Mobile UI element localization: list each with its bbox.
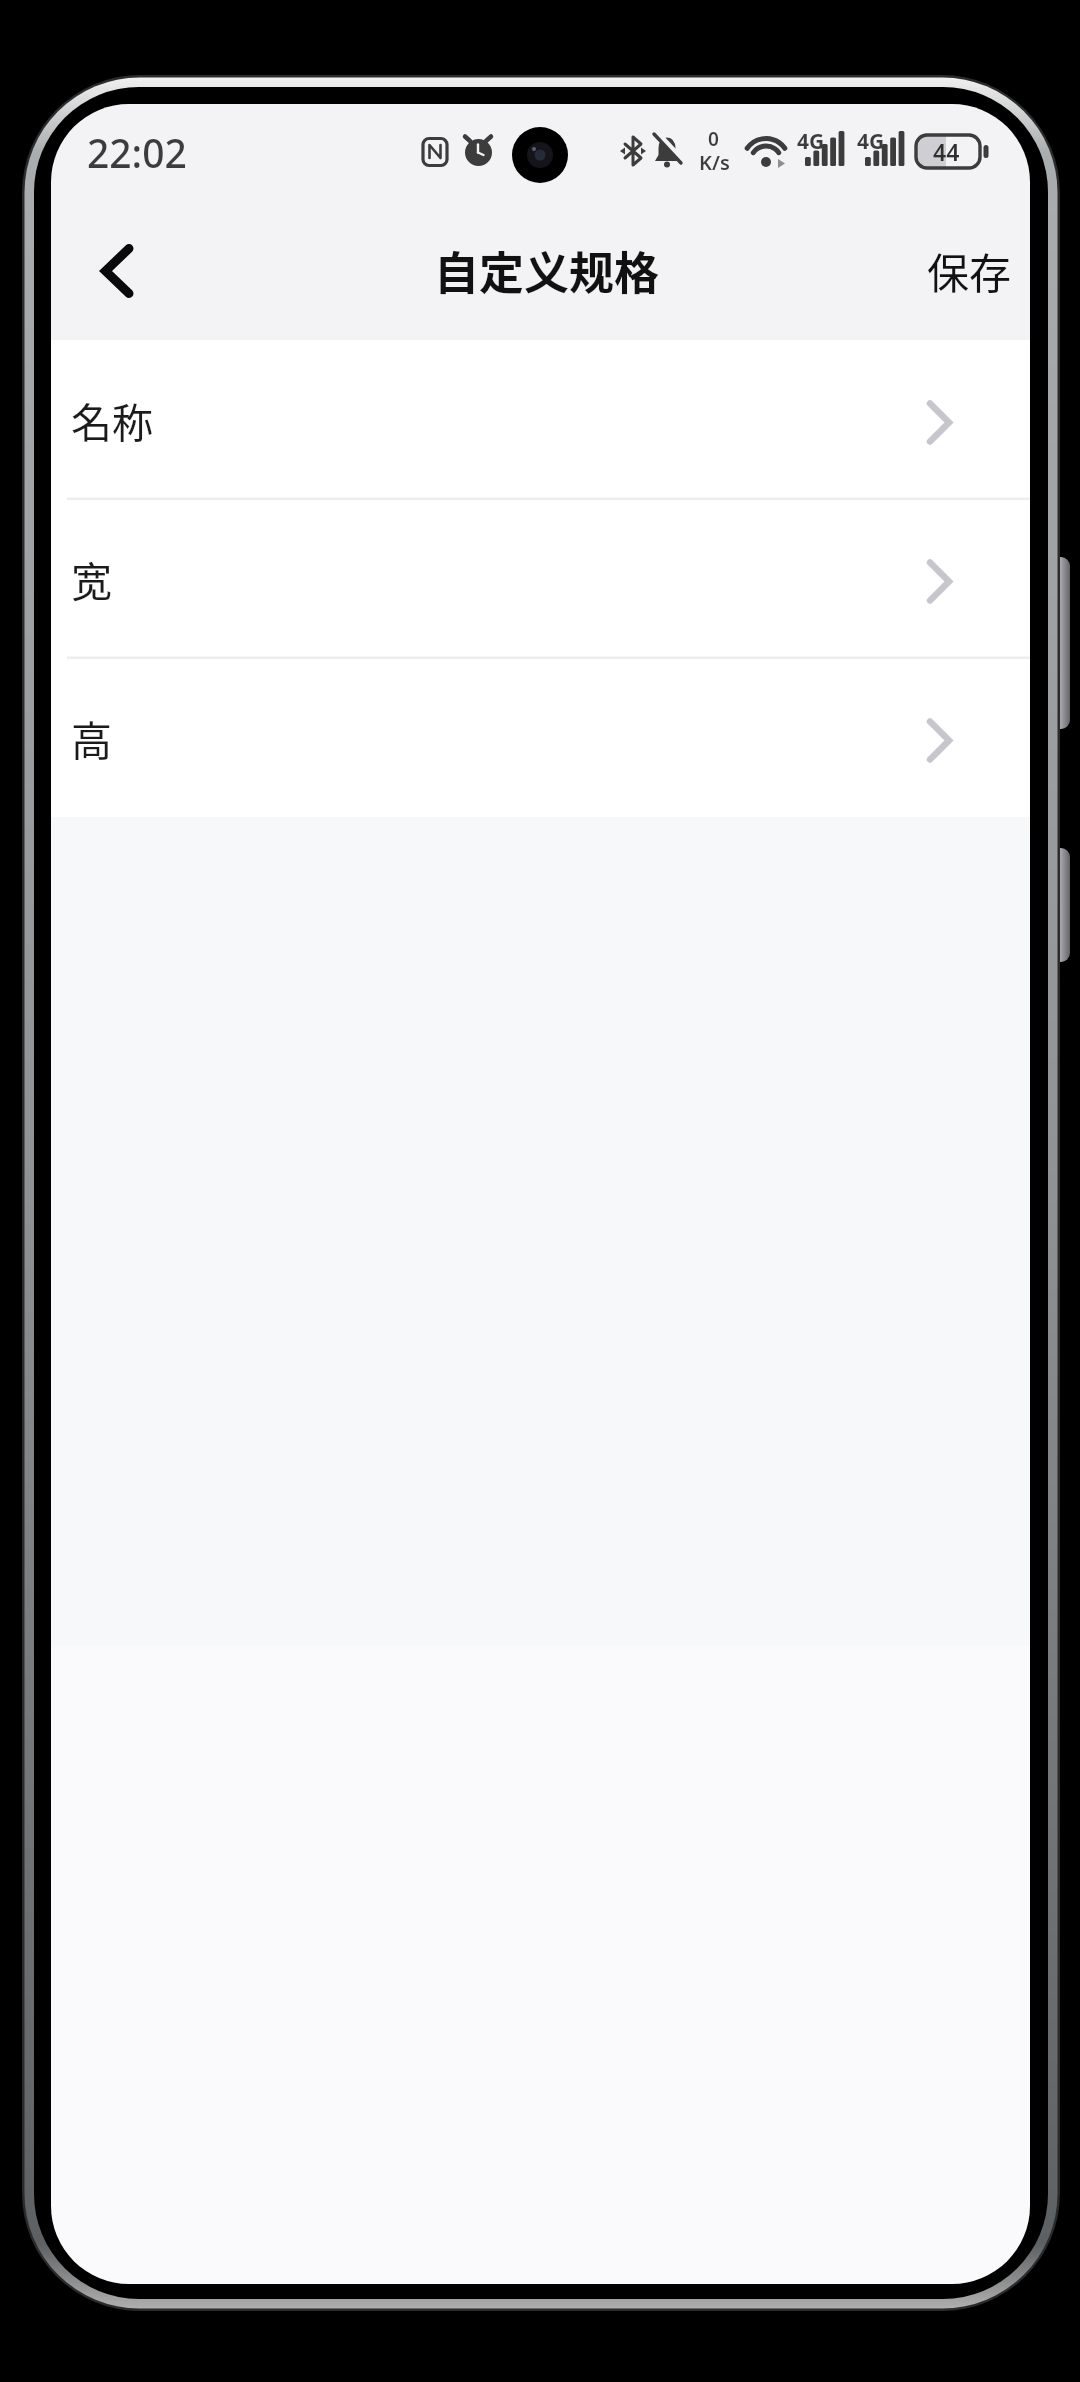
staticText: 宽 [71, 549, 112, 608]
staticText: 保存 [927, 240, 1012, 301]
staticText: 4G [797, 127, 825, 151]
staticText: 22:02 [87, 126, 187, 176]
staticText: 4G [857, 127, 885, 151]
staticText: 44 [933, 136, 960, 166]
staticText: 高 [71, 708, 112, 767]
staticText: 名称 [71, 390, 153, 449]
staticText: 自定义规格 [434, 238, 660, 303]
staticText: K/s [699, 149, 730, 175]
staticText: 0 [708, 126, 719, 152]
